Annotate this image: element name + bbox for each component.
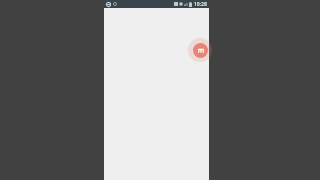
- staticText: 10:28: [194, 1, 207, 8]
- button[interactable]: Compose: [193, 43, 208, 58]
